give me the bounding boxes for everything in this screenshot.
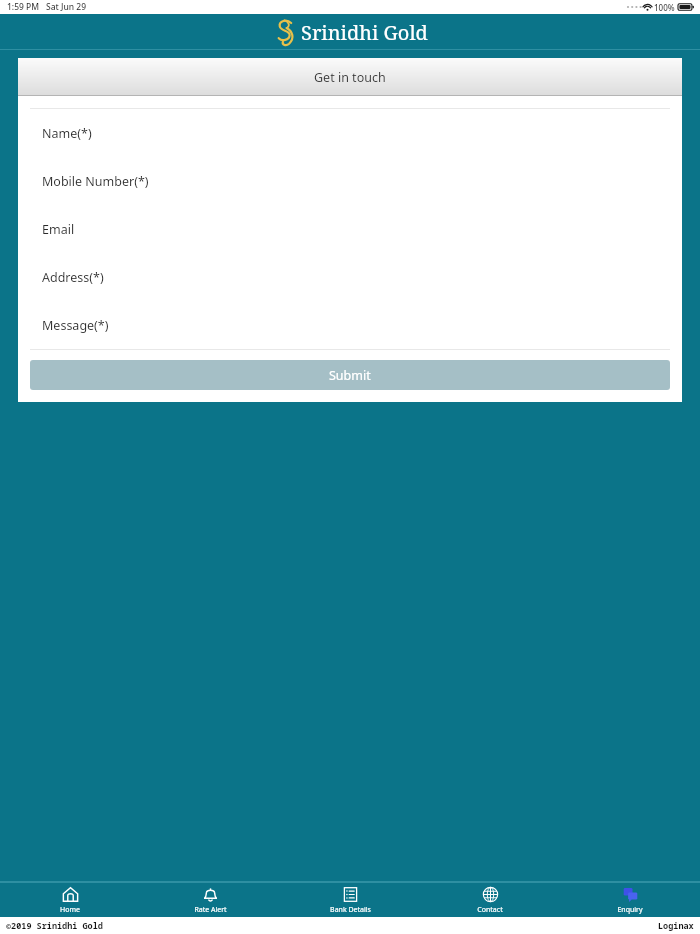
staticText: Get in touch [314, 69, 386, 86]
other: Enquiry [622, 886, 639, 903]
staticText: Message(*) [42, 317, 109, 334]
button[interactable]: Name(*) [18, 109, 682, 157]
staticText: Name(*) [42, 125, 92, 142]
button[interactable]: Submit [30, 360, 670, 390]
button[interactable]: Email [18, 205, 682, 253]
staticText: ©2019 Srinidhi Gold [6, 920, 103, 932]
staticText: Mobile Number(*) [42, 173, 149, 190]
staticText: Bank Details [330, 905, 371, 915]
staticText: Submit [329, 367, 371, 384]
button[interactable]: Address(*) [18, 253, 682, 301]
staticText: Contact [477, 905, 503, 915]
staticText: Email [42, 221, 75, 238]
staticText: Loginax [658, 920, 694, 932]
button[interactable]: Rate Alert [140, 883, 280, 917]
staticText: Home [60, 905, 80, 915]
button[interactable]: Mobile Number(*) [18, 157, 682, 205]
button[interactable]: Home [0, 883, 140, 917]
staticText: Sat Jun 29 [46, 1, 87, 13]
other: Rate Alert [202, 886, 219, 903]
button[interactable]: Message(*) [18, 301, 682, 349]
button[interactable]: Enquiry [560, 883, 700, 917]
staticText: 100% [654, 2, 675, 13]
other: Contact [482, 886, 499, 903]
staticText: Address(*) [42, 269, 104, 286]
other: Bank Details [342, 886, 359, 903]
staticText: Enquiry [617, 905, 643, 915]
staticText: 1:59 PM [7, 1, 40, 13]
other: Home [62, 886, 79, 903]
button[interactable]: Contact [420, 883, 560, 917]
button[interactable]: Bank Details [280, 883, 420, 917]
staticText: Srinidhi Gold [301, 19, 428, 46]
staticText: Rate Alert [194, 905, 227, 915]
